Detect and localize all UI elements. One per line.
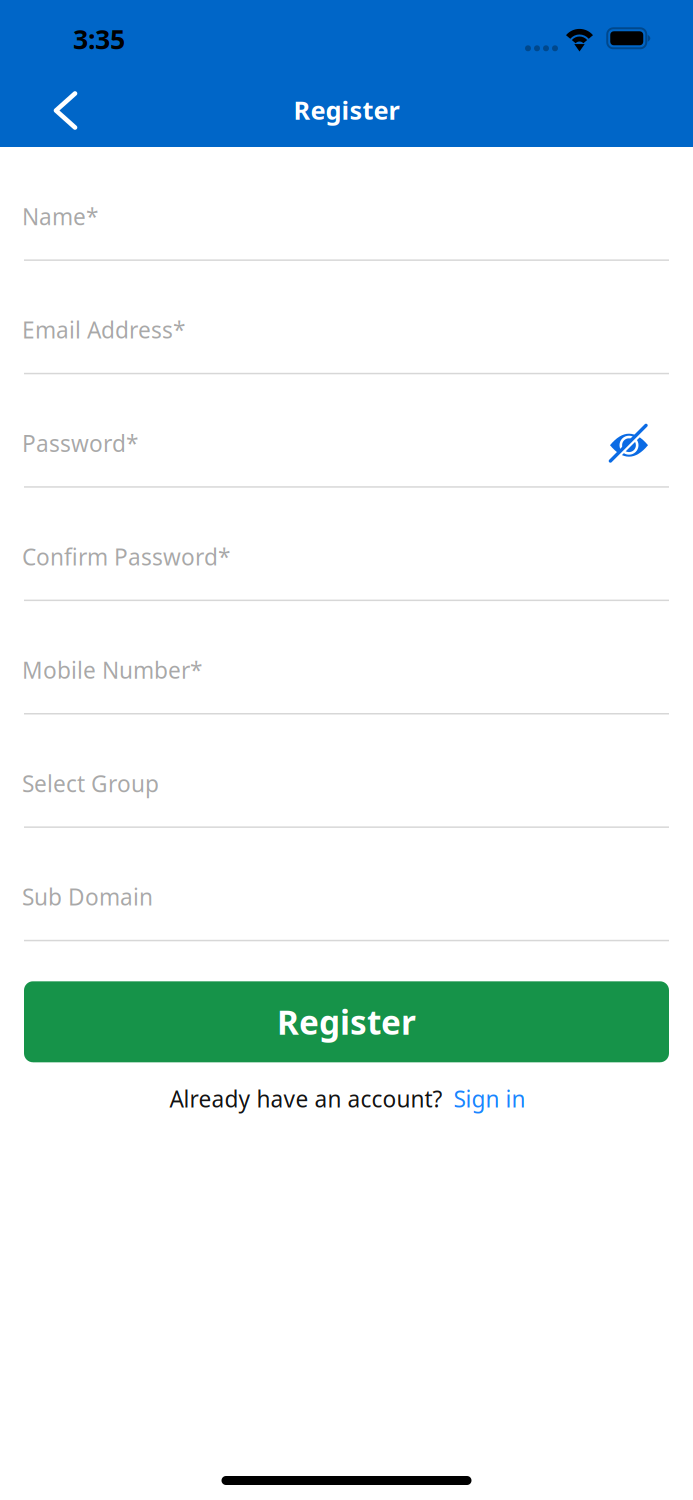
button[interactable]: Sign in [453, 1084, 525, 1114]
staticText: Register [277, 1000, 416, 1044]
button[interactable]: Name* [24, 193, 669, 239]
staticText: Register [293, 93, 399, 127]
staticText: Email Address* [22, 315, 185, 345]
staticText: Already have an account? [169, 1084, 442, 1114]
button[interactable]: Select Group [24, 760, 669, 806]
staticText: Mobile Number* [22, 655, 202, 685]
button[interactable]: Password* [24, 420, 603, 466]
staticText: Select Group [22, 768, 159, 798]
button[interactable]: Back [0, 73, 103, 143]
button[interactable]: Sub Domain [24, 874, 669, 920]
staticText: Password* [22, 428, 138, 458]
button[interactable]: Show password [603, 420, 669, 466]
button[interactable]: Mobile Number* [24, 647, 669, 693]
staticText: Sign in [453, 1084, 525, 1114]
button[interactable]: Confirm Password* [24, 534, 669, 580]
button[interactable]: Email Address* [24, 307, 669, 353]
button[interactable]: Register [24, 981, 669, 1062]
staticText: Confirm Password* [22, 541, 230, 572]
staticText: Sub Domain [22, 882, 153, 912]
staticText: 3:35 [73, 21, 125, 57]
staticText: Name* [22, 201, 98, 231]
